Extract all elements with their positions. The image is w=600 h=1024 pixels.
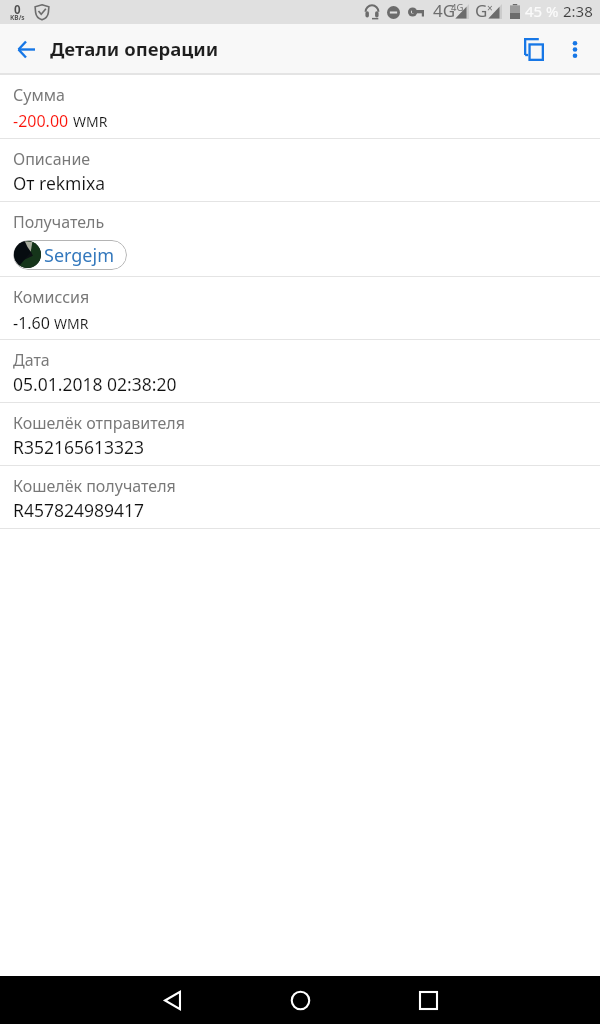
staticText: -1.60	[13, 312, 50, 334]
staticText: Описание	[13, 148, 91, 170]
staticText: R352165613323	[13, 435, 145, 459]
button[interactable]: Получатель	[0, 202, 600, 277]
staticText: WMR	[54, 314, 89, 333]
button[interactable]: Recents	[398, 976, 458, 1024]
button[interactable]: More options	[551, 25, 599, 73]
staticText: 05.01.2018 02:38:20	[13, 372, 177, 396]
button[interactable]: Кошелёк получателя	[0, 466, 600, 529]
staticText: От rekmixa	[13, 171, 106, 195]
staticText: Сумма	[13, 84, 65, 106]
button[interactable]: Кошелёк отправителя	[0, 403, 600, 466]
staticText: Получатель	[13, 211, 105, 233]
button[interactable]: Back	[142, 976, 202, 1024]
staticText: Детали операции	[50, 36, 219, 61]
staticText: -200.00	[13, 110, 69, 132]
button[interactable]: Дата	[0, 340, 600, 403]
staticText: Sergejm	[44, 243, 114, 268]
staticText: Дата	[13, 349, 50, 371]
staticText: Кошелёк получателя	[13, 475, 176, 497]
staticText: Кошелёк отправителя	[13, 412, 185, 434]
staticText: 4G	[451, 1, 464, 14]
staticText: G	[475, 0, 488, 22]
button[interactable]: Описание	[0, 139, 600, 202]
staticText: 45 %	[525, 1, 559, 21]
staticText: 2:38	[563, 1, 593, 21]
staticText: 4G	[433, 0, 456, 22]
staticText: 0	[14, 2, 21, 18]
staticText: KB/s	[10, 13, 25, 22]
button[interactable]: Sergejm	[13, 240, 127, 270]
staticText: WMR	[73, 112, 108, 131]
button[interactable]: Сумма	[0, 75, 600, 139]
staticText: R457824989417	[13, 498, 145, 522]
button[interactable]: Copy	[510, 25, 558, 73]
button[interactable]: Комиссия	[0, 277, 600, 340]
button[interactable]: Back	[2, 25, 50, 73]
staticText: Комиссия	[13, 286, 90, 308]
staticText: ×	[487, 1, 493, 15]
button[interactable]: Home	[270, 976, 330, 1024]
